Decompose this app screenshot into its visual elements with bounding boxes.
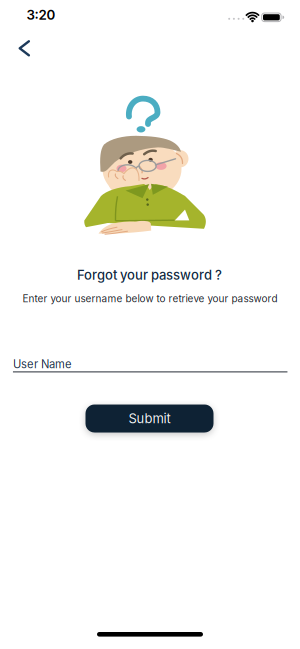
button[interactable]: Submit <box>85 404 213 432</box>
button[interactable]: Back <box>18 40 30 56</box>
staticText: Forgot your password ? <box>77 267 222 283</box>
staticText: Enter your username below to retrieve yo… <box>22 292 277 305</box>
button[interactable]: User Name <box>13 357 287 372</box>
staticText: Submit <box>128 411 170 426</box>
staticText: 3:20 <box>26 7 55 23</box>
staticText: User Name <box>13 357 72 371</box>
